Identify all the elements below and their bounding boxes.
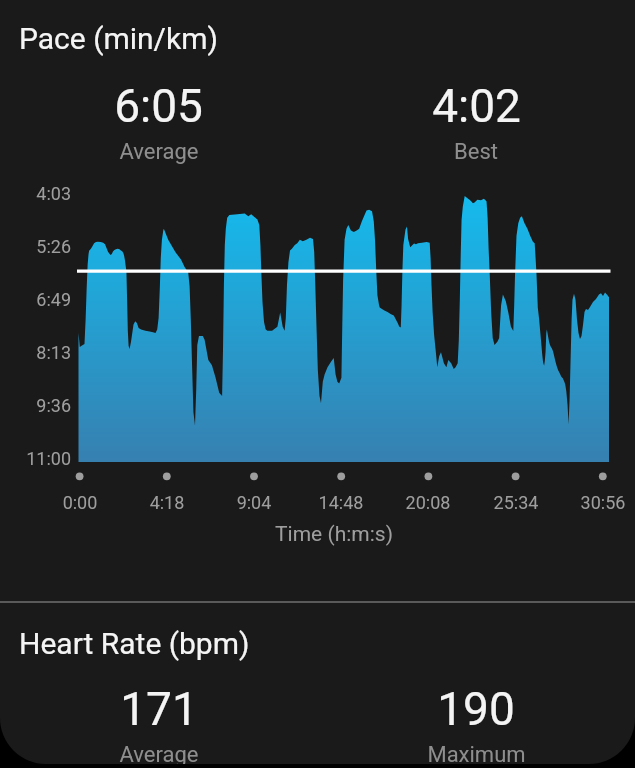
button[interactable]: 171 <box>0 682 317 764</box>
staticText: 5:26 <box>11 236 71 257</box>
staticText: Heart Rate (bpm) <box>19 626 250 661</box>
button[interactable]: Pace chart details <box>0 0 635 601</box>
staticText: 6:49 <box>11 289 71 310</box>
staticText: 4:02 <box>432 79 521 133</box>
staticText: Average <box>119 139 199 165</box>
button[interactable]: 190 <box>317 682 635 764</box>
staticText: 25:34 <box>471 492 561 513</box>
staticText: 190 <box>437 682 515 736</box>
staticText: 9:36 <box>11 395 71 416</box>
staticText: 0:00 <box>35 492 125 513</box>
staticText: 9:04 <box>209 492 299 513</box>
staticText: 11:00 <box>11 448 71 469</box>
staticText: 20:08 <box>383 492 473 513</box>
staticText: 4:03 <box>11 183 71 204</box>
staticText: 30:56 <box>558 492 635 513</box>
button[interactable]: 6:05 <box>0 79 317 165</box>
staticText: 6:05 <box>114 79 203 133</box>
staticText: Time (h:m:s) <box>234 522 434 547</box>
staticText: 14:48 <box>296 492 386 513</box>
button[interactable]: Heart rate details <box>0 603 635 764</box>
staticText: Average <box>119 742 199 764</box>
button[interactable]: 4:02 <box>317 79 635 165</box>
staticText: Best <box>454 139 498 165</box>
staticText: Maximum <box>427 742 526 764</box>
staticText: 4:18 <box>122 492 212 513</box>
staticText: Pace (min/km) <box>19 21 218 56</box>
staticText: 8:13 <box>11 342 71 363</box>
staticText: 171 <box>120 682 198 736</box>
